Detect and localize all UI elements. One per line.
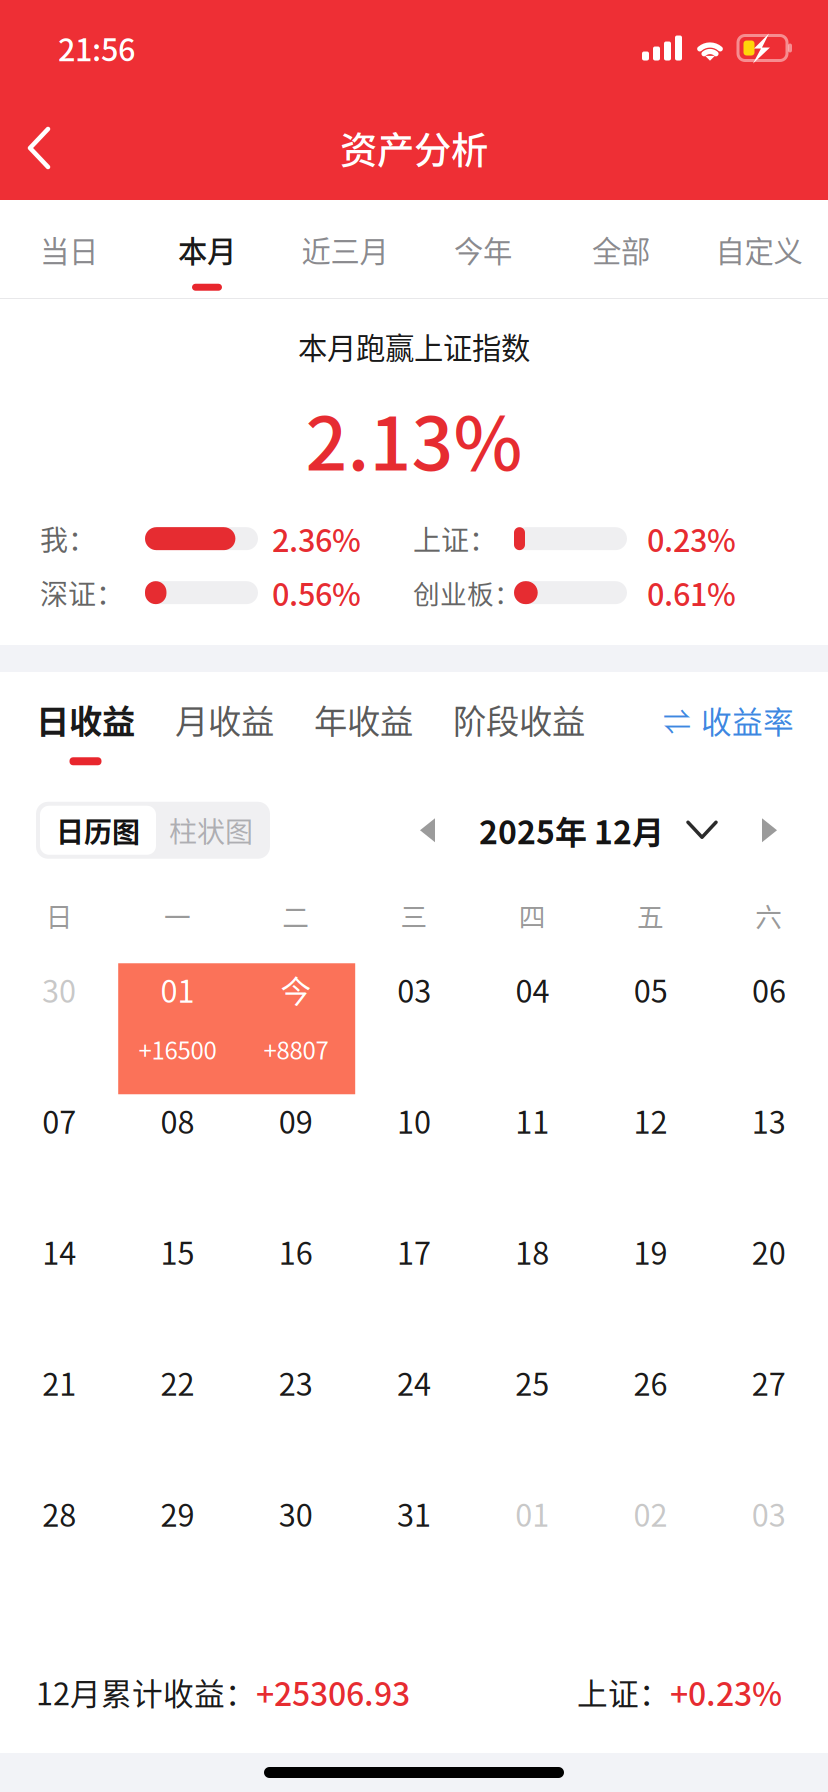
staticText: 全部	[592, 228, 650, 271]
button[interactable]: 近三月	[276, 200, 414, 298]
staticText: 深证：	[40, 572, 124, 613]
staticText: 21	[42, 1360, 76, 1405]
staticText: 27	[752, 1360, 786, 1405]
staticText: 16	[279, 1229, 313, 1274]
staticText: 日收益	[36, 695, 135, 743]
button[interactable]: 本月	[138, 200, 276, 298]
staticText: +25306.93	[256, 1669, 410, 1715]
staticText: 0.56%	[272, 570, 361, 615]
staticText: 六	[755, 896, 782, 935]
button[interactable]: 柱状图	[156, 806, 266, 855]
button[interactable]: 阶段收益	[413, 695, 585, 769]
staticText: 25	[515, 1360, 549, 1405]
staticText: 上证：	[577, 1670, 670, 1714]
staticText: 01	[515, 1491, 549, 1536]
staticText: 本月跑赢上证指数	[298, 325, 530, 367]
staticText: 20	[752, 1229, 786, 1274]
staticText: 创业板：	[413, 573, 521, 612]
staticText: 13	[752, 1098, 786, 1143]
staticText: 12月累计收益：	[36, 1670, 256, 1714]
staticText: 04	[515, 967, 549, 1012]
staticText: 08	[160, 1098, 194, 1143]
staticText: 2.13%	[305, 385, 522, 492]
staticText: 31	[397, 1491, 431, 1536]
button[interactable]: 月收益	[135, 695, 274, 769]
staticText: 日历图	[56, 810, 140, 850]
staticText: 30	[279, 1491, 313, 1536]
staticText: 当日	[40, 228, 98, 271]
staticText: 17	[397, 1229, 431, 1274]
staticText: 26	[634, 1360, 668, 1405]
button[interactable]: 日收益	[36, 695, 135, 769]
button[interactable]: 下个月	[746, 807, 792, 853]
button[interactable]: 年收益	[274, 695, 413, 769]
staticText: 阶段收益	[453, 695, 585, 743]
staticText: 0.61%	[647, 570, 736, 615]
staticText: 03	[752, 1491, 786, 1536]
staticText: 三	[400, 896, 427, 935]
staticText: 日	[46, 896, 73, 935]
staticText: 0.23%	[647, 516, 736, 561]
staticText: 月收益	[175, 695, 274, 743]
staticText: 19	[634, 1229, 668, 1274]
staticText: 五	[637, 896, 664, 935]
button[interactable]: 自定义	[690, 200, 828, 298]
staticText: 收益率	[701, 698, 794, 742]
staticText: 今	[280, 967, 311, 1012]
staticText: 23	[279, 1360, 313, 1405]
staticText: +8807	[263, 1032, 328, 1066]
staticText: 14	[42, 1229, 76, 1274]
staticText: 10	[397, 1098, 431, 1143]
button[interactable]: 全部	[552, 200, 690, 298]
staticText: 01	[160, 967, 194, 1012]
staticText: 24	[397, 1360, 431, 1405]
staticText: 四	[519, 896, 546, 935]
button[interactable]: 今年	[414, 200, 552, 298]
staticText: 09	[279, 1098, 313, 1143]
staticText: 资产分析	[340, 121, 488, 175]
staticText: +16500	[138, 1032, 216, 1066]
staticText: ⇌	[663, 700, 691, 740]
staticText: 06	[752, 967, 786, 1012]
staticText: 18	[515, 1229, 549, 1274]
button[interactable]: 当日	[0, 200, 138, 298]
staticText: 年收益	[314, 695, 413, 743]
staticText: 05	[634, 967, 668, 1012]
button[interactable]: 返回	[0, 104, 78, 192]
staticText: +0.23%	[670, 1669, 782, 1715]
staticText: 28	[42, 1491, 76, 1536]
staticText: 本月	[178, 228, 236, 271]
staticText: 自定义	[715, 228, 802, 271]
staticText: 12	[634, 1098, 668, 1143]
staticText: 02	[634, 1491, 668, 1536]
staticText: 今年	[454, 228, 512, 271]
staticText: 近三月	[301, 228, 388, 271]
staticText: 我：	[40, 518, 96, 559]
staticText: 29	[160, 1491, 194, 1536]
staticText: 21:56	[58, 26, 135, 70]
staticText: 15	[160, 1229, 194, 1274]
staticText: 30	[42, 967, 76, 1012]
button[interactable]: 日历图	[40, 806, 156, 855]
staticText: 07	[42, 1098, 76, 1143]
staticText: 22	[160, 1360, 194, 1405]
staticText: 2.36%	[272, 516, 361, 561]
staticText: 03	[397, 967, 431, 1012]
staticText: 11	[515, 1098, 549, 1143]
button[interactable]: ⇌	[663, 695, 794, 742]
button[interactable]: 上个月	[405, 807, 451, 853]
staticText: 上证：	[413, 518, 497, 559]
staticText: 二	[282, 896, 309, 935]
staticText: 柱状图	[169, 810, 253, 850]
staticText: 一	[164, 896, 191, 935]
button[interactable]: 2025年 12月	[479, 807, 718, 853]
staticText: 2025年 12月	[479, 807, 664, 853]
